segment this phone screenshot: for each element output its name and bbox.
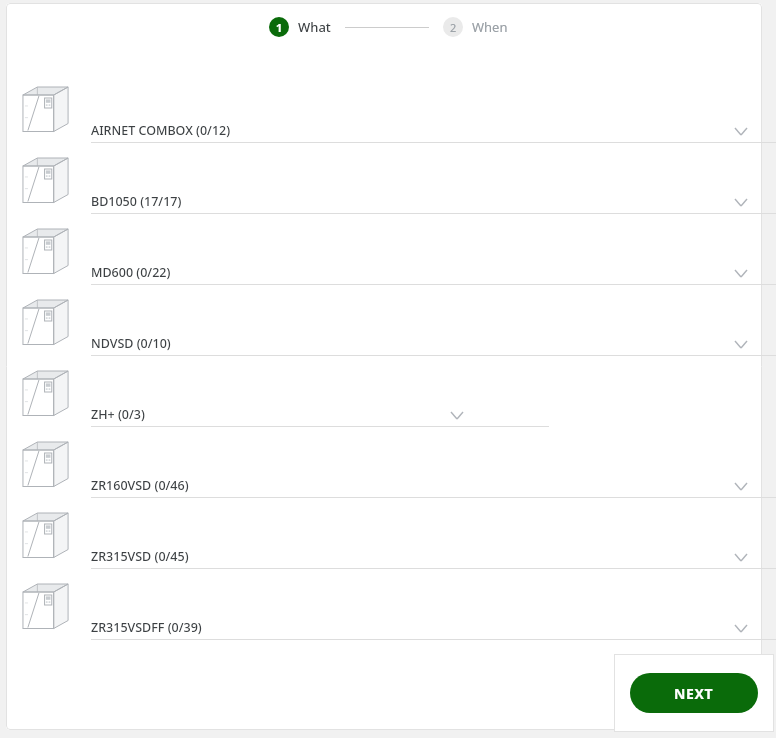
button[interactable]: Expand ZR160VSD (0/46) <box>730 475 752 497</box>
button[interactable]: ZH+ (0/3) <box>0 366 776 437</box>
button[interactable]: Expand ZH+ (0/3) <box>446 404 468 426</box>
button[interactable]: NDVSD (0/10) <box>0 295 776 366</box>
staticText: When <box>472 18 508 36</box>
button[interactable]: Expand AIRNET COMBOX (0/12) <box>730 120 752 142</box>
button[interactable]: ZR315VSDFF (0/39) <box>0 579 776 650</box>
staticText: ZR160VSD (0/46) <box>91 477 189 494</box>
staticText: NDVSD (0/10) <box>91 335 171 352</box>
button[interactable]: ZR315VSD (0/45) <box>0 508 776 579</box>
staticText: MD600 (0/22) <box>91 264 171 281</box>
button[interactable]: NEXT <box>630 673 758 713</box>
staticText: NEXT <box>674 684 714 703</box>
button[interactable]: Expand BD1050 (17/17) <box>730 191 752 213</box>
staticText: 1 <box>276 20 283 35</box>
staticText: ZR315VSD (0/45) <box>91 548 189 565</box>
staticText: BD1050 (17/17) <box>91 193 182 210</box>
button[interactable]: Expand NDVSD (0/10) <box>730 333 752 355</box>
button[interactable]: Expand ZR315VSD (0/45) <box>730 546 752 568</box>
button[interactable]: MD600 (0/22) <box>0 224 776 295</box>
button[interactable]: Expand MD600 (0/22) <box>730 262 752 284</box>
staticText: 2 <box>450 20 457 35</box>
staticText: AIRNET COMBOX (0/12) <box>91 122 231 139</box>
button[interactable]: BD1050 (17/17) <box>0 153 776 224</box>
staticText: What <box>298 18 331 36</box>
button[interactable]: AIRNET COMBOX (0/12) <box>0 82 776 153</box>
button[interactable]: ZR160VSD (0/46) <box>0 437 776 508</box>
button[interactable]: 2 <box>443 17 508 37</box>
button[interactable]: Expand ZR315VSDFF (0/39) <box>730 617 752 639</box>
staticText: ZH+ (0/3) <box>91 406 145 423</box>
staticText: ZR315VSDFF (0/39) <box>91 619 202 636</box>
button[interactable]: 1 <box>269 17 331 37</box>
